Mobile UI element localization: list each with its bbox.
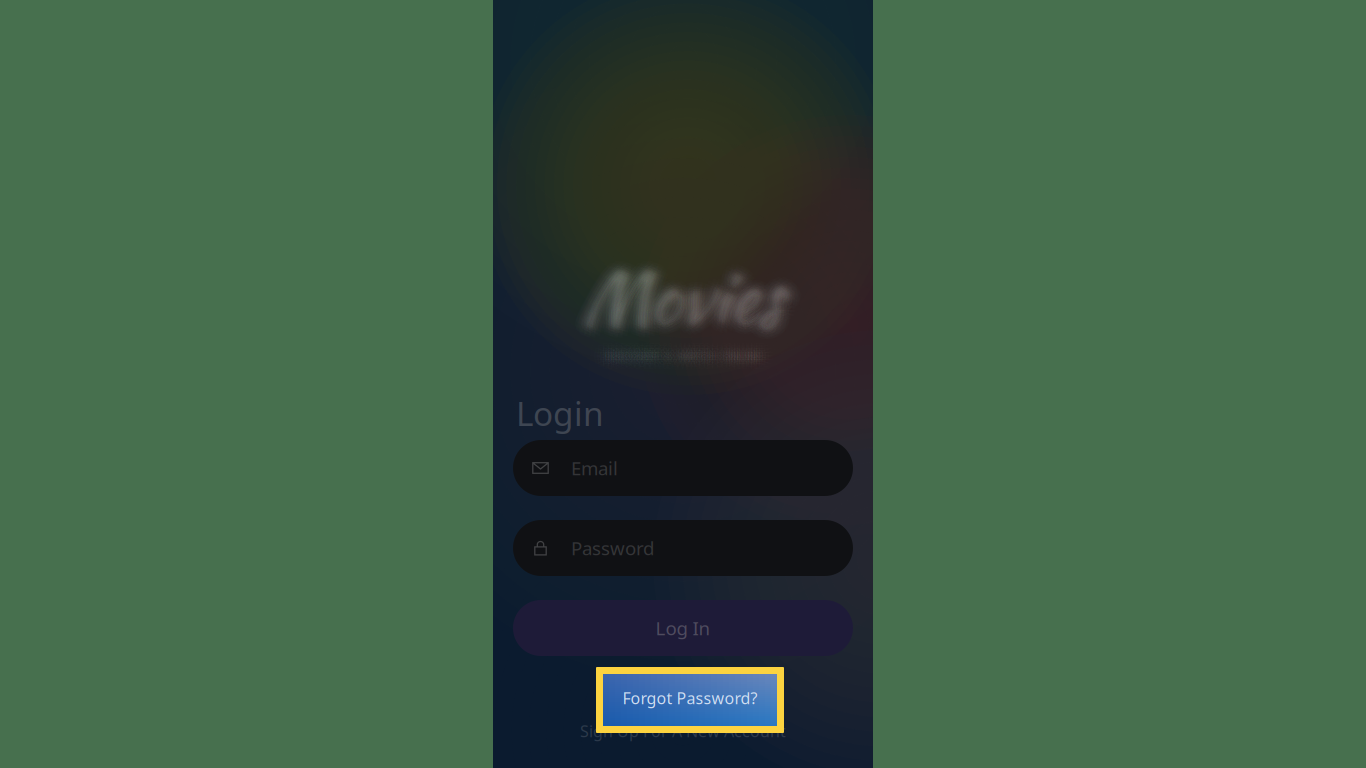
staticText: Movies: [588, 243, 788, 347]
staticText: Movies: [588, 250, 788, 355]
staticText: DISCOVER & WATCH ONLINE: [603, 351, 760, 364]
staticText: DISCOVER & WATCH ONLINE: [599, 355, 756, 368]
staticText: DISCOVER & WATCH ONLINE: [602, 349, 759, 362]
staticText: Movies: [588, 245, 788, 349]
staticText: DISCOVER & WATCH ONLINE: [610, 344, 767, 357]
staticText: DISCOVER & WATCH ONLINE: [602, 346, 759, 359]
staticText: DISCOVER & WATCH ONLINE: [607, 349, 764, 362]
staticText: Movies: [585, 245, 785, 349]
staticText: DISCOVER & WATCH ONLINE: [610, 349, 767, 362]
staticText: DISCOVER & WATCH ONLINE: [600, 352, 757, 365]
staticText: DISCOVER & WATCH ONLINE: [597, 357, 754, 370]
staticText: Movies: [588, 247, 788, 351]
staticText: Movies: [585, 246, 785, 351]
staticText: DISCOVER & WATCH ONLINE: [600, 352, 757, 365]
staticText: Movies: [580, 249, 780, 353]
staticText: DISCOVER & WATCH ONLINE: [604, 345, 761, 358]
staticText: DISCOVER & WATCH ONLINE: [606, 356, 763, 369]
staticText: DISCOVER & WATCH ONLINE: [602, 353, 759, 366]
staticText: DISCOVER & WATCH ONLINE: [610, 349, 767, 362]
staticText: Movies: [581, 246, 781, 351]
staticText: DISCOVER & WATCH ONLINE: [603, 356, 760, 369]
staticText: Movies: [578, 243, 778, 347]
staticText: Movies: [578, 247, 778, 351]
staticText: Movies: [585, 243, 785, 348]
staticText: Movies: [583, 249, 783, 354]
staticText: Movies: [583, 240, 783, 345]
staticText: Movies: [583, 247, 783, 351]
staticText: Movies: [581, 246, 781, 351]
staticText: DISCOVER & WATCH ONLINE: [593, 349, 750, 362]
staticText: DISCOVER & WATCH ONLINE: [606, 343, 763, 356]
staticText: Movies: [586, 249, 786, 353]
staticText: Movies: [583, 245, 783, 349]
staticText: Movies: [580, 254, 780, 358]
staticText: DISCOVER & WATCH ONLINE: [602, 349, 759, 362]
staticText: DISCOVER & WATCH ONLINE: [606, 348, 763, 361]
staticText: DISCOVER & WATCH ONLINE: [603, 348, 760, 361]
staticText: Movies: [580, 245, 780, 349]
staticText: Movies: [591, 248, 791, 352]
staticText: Movies: [588, 243, 788, 347]
staticText: Movies: [578, 250, 778, 355]
staticText: DISCOVER & WATCH ONLINE: [612, 357, 769, 370]
button[interactable]: Sign Up For A New Account: [513, 721, 853, 741]
staticText: DISCOVER & WATCH ONLINE: [603, 343, 760, 356]
staticText: DISCOVER & WATCH ONLINE: [607, 346, 764, 359]
staticText: Forgot Password?: [622, 687, 757, 709]
staticText: DISCOVER & WATCH ONLINE: [597, 347, 754, 359]
staticText: DISCOVER & WATCH ONLINE: [612, 342, 769, 355]
staticText: Movies: [581, 243, 781, 348]
staticText: DISCOVER & WATCH ONLINE: [600, 347, 757, 360]
staticText: Email: [571, 456, 618, 480]
staticText: DISCOVER & WATCH ONLINE: [606, 348, 763, 361]
staticText: Movies: [590, 238, 790, 342]
staticText: Movies: [585, 251, 785, 356]
staticText: Movies: [583, 240, 783, 345]
staticText: DISCOVER & WATCH ONLINE: [604, 354, 761, 367]
staticText: DISCOVER & WATCH ONLINE: [609, 352, 766, 365]
staticText: Movies: [578, 239, 778, 344]
staticText: DISCOVER & WATCH ONLINE: [607, 353, 764, 366]
staticText: DISCOVER & WATCH ONLINE: [596, 349, 753, 362]
staticText: Movies: [580, 241, 780, 345]
staticText: Movies: [577, 245, 777, 349]
staticText: DISCOVER & WATCH ONLINE: [604, 349, 761, 362]
button[interactable]: Log In: [513, 600, 853, 656]
staticText: DISCOVER & WATCH ONLINE: [594, 346, 751, 358]
staticText: Movies: [583, 243, 783, 347]
staticText: DISCOVER & WATCH ONLINE: [604, 354, 761, 367]
staticText: Sign Up For A New Account: [580, 720, 786, 742]
staticText: DISCOVER & WATCH ONLINE: [607, 349, 764, 362]
staticText: DISCOVER & WATCH ONLINE: [604, 347, 761, 360]
staticText: DISCOVER & WATCH ONLINE: [604, 345, 761, 358]
staticText: Movies: [580, 236, 780, 340]
staticText: Movies: [576, 238, 776, 342]
button[interactable]: Forgot Password?: [513, 675, 853, 695]
staticText: DISCOVER & WATCH ONLINE: [607, 346, 764, 359]
staticText: DISCOVER & WATCH ONLINE: [603, 351, 760, 364]
staticText: DISCOVER & WATCH ONLINE: [602, 353, 759, 366]
staticText: DISCOVER & WATCH ONLINE: [607, 341, 764, 353]
staticText: DISCOVER & WATCH ONLINE: [607, 358, 764, 371]
staticText: DISCOVER & WATCH ONLINE: [604, 349, 761, 362]
staticText: Movies: [588, 247, 788, 351]
staticText: Movies: [586, 241, 786, 345]
staticText: Movies: [577, 245, 777, 349]
staticText: DISCOVER & WATCH ONLINE: [607, 353, 764, 366]
staticText: Movies: [573, 249, 773, 353]
staticText: Movies: [578, 243, 778, 347]
staticText: Movies: [573, 241, 773, 345]
staticText: Movies: [585, 238, 785, 343]
staticText: Movies: [588, 239, 788, 344]
staticText: Movies: [581, 251, 781, 356]
staticText: Movies: [575, 248, 775, 352]
staticText: DISCOVER & WATCH ONLINE: [609, 347, 766, 360]
staticText: Movies: [593, 241, 793, 345]
staticText: Movies: [591, 245, 791, 349]
staticText: DISCOVER & WATCH ONLINE: [615, 346, 772, 358]
staticText: DISCOVER & WATCH ONLINE: [599, 349, 756, 362]
staticText: Movies: [580, 241, 780, 345]
staticText: Movies: [583, 245, 783, 349]
staticText: Movies: [590, 252, 790, 356]
